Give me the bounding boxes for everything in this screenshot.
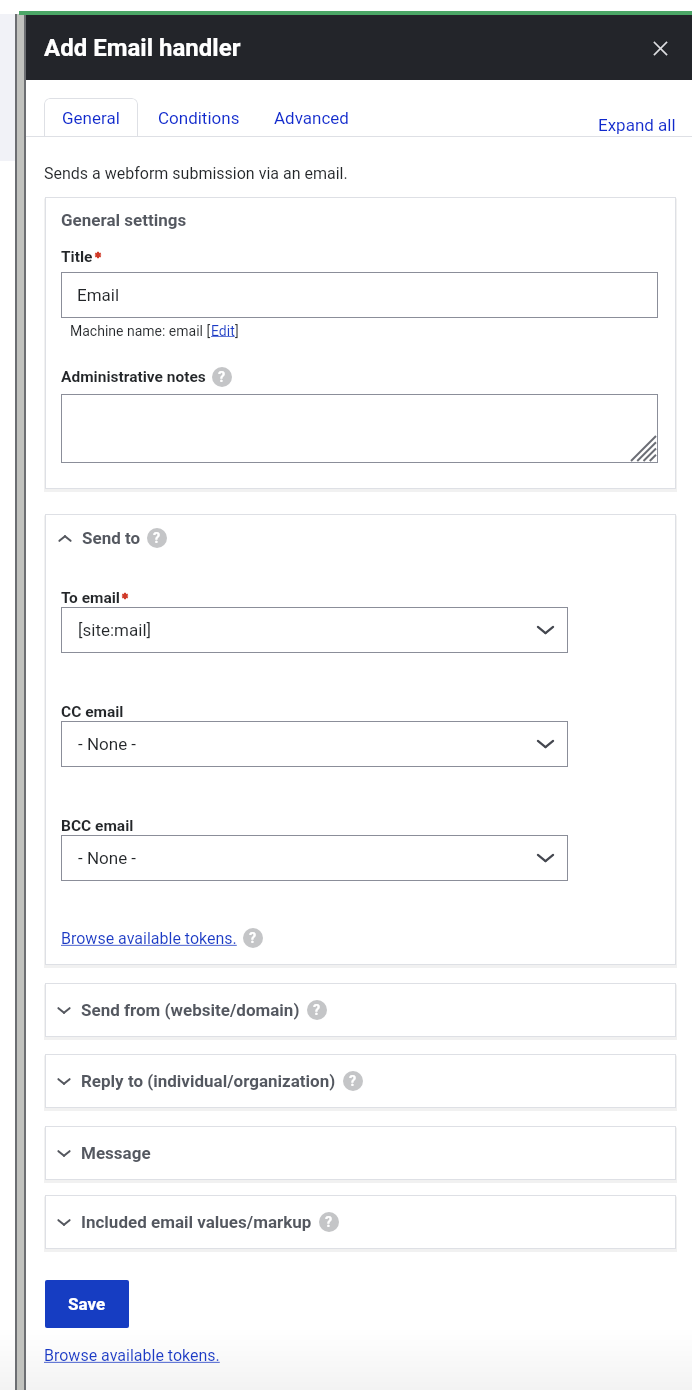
staticText: - None - — [78, 848, 137, 868]
button[interactable]: Save — [45, 1280, 129, 1328]
button[interactable]: Browse available tokens. — [44, 1346, 220, 1365]
staticText: Send from (website/domain) — [81, 1000, 300, 1020]
button[interactable]: Help — [243, 928, 263, 948]
staticText: Advanced — [274, 108, 349, 128]
staticText: ? — [325, 1214, 333, 1231]
button[interactable]: Send from (website/domain) — [45, 983, 676, 1037]
staticText: ? — [313, 1002, 321, 1019]
button[interactable]: Included email values/markup — [45, 1195, 676, 1249]
staticText: Title — [61, 248, 93, 266]
staticText: Machine name: email [ — [70, 323, 211, 339]
button[interactable]: Reply to (individual/organization) — [45, 1054, 676, 1108]
staticText: ? — [249, 930, 257, 947]
staticText: ] — [235, 323, 239, 339]
staticText: General settings — [61, 210, 187, 230]
staticText: Send to — [82, 528, 141, 548]
staticText: Message — [81, 1143, 151, 1163]
button[interactable]: Advanced — [257, 98, 367, 137]
button[interactable]: Help — [319, 1212, 339, 1232]
button[interactable] — [61, 394, 658, 463]
button[interactable]: Send to — [58, 528, 167, 548]
button[interactable]: Browse available tokens. — [61, 929, 237, 948]
button[interactable]: Message — [45, 1126, 676, 1180]
button[interactable]: General — [44, 98, 138, 137]
staticText: Add Email handler — [44, 34, 241, 62]
staticText: Included email values/markup — [81, 1212, 312, 1232]
button[interactable]: Conditions — [138, 98, 257, 137]
staticText: Reply to (individual/organization) — [81, 1071, 336, 1091]
button[interactable]: [site:mail] — [61, 607, 568, 653]
staticText: Administrative notes — [61, 368, 206, 386]
staticText: General — [62, 108, 120, 128]
staticText: CC email — [61, 703, 124, 721]
button[interactable]: Help — [212, 367, 232, 387]
button[interactable]: Expand all — [26, 115, 676, 135]
button[interactable]: Edit — [211, 323, 235, 339]
staticText: Email — [77, 285, 120, 305]
staticText: To email — [61, 589, 120, 607]
button[interactable]: Email — [61, 272, 658, 318]
button[interactable]: - None - — [61, 835, 568, 881]
button[interactable]: Help — [307, 1000, 327, 1020]
staticText: Save — [68, 1294, 106, 1314]
button[interactable]: Close — [645, 33, 675, 63]
staticText: ? — [153, 530, 161, 547]
staticText: Conditions — [158, 108, 240, 128]
button[interactable]: - None - — [61, 721, 568, 767]
staticText: Expand all — [598, 115, 676, 135]
staticText: ? — [349, 1073, 357, 1090]
staticText: ? — [218, 369, 226, 386]
staticText: [site:mail] — [78, 620, 152, 640]
staticText: - None - — [78, 734, 137, 754]
staticText: Sends a webform submission via an email. — [44, 164, 348, 183]
button[interactable]: Help — [343, 1071, 363, 1091]
button[interactable]: Help — [147, 528, 167, 548]
staticText: BCC email — [61, 817, 134, 835]
